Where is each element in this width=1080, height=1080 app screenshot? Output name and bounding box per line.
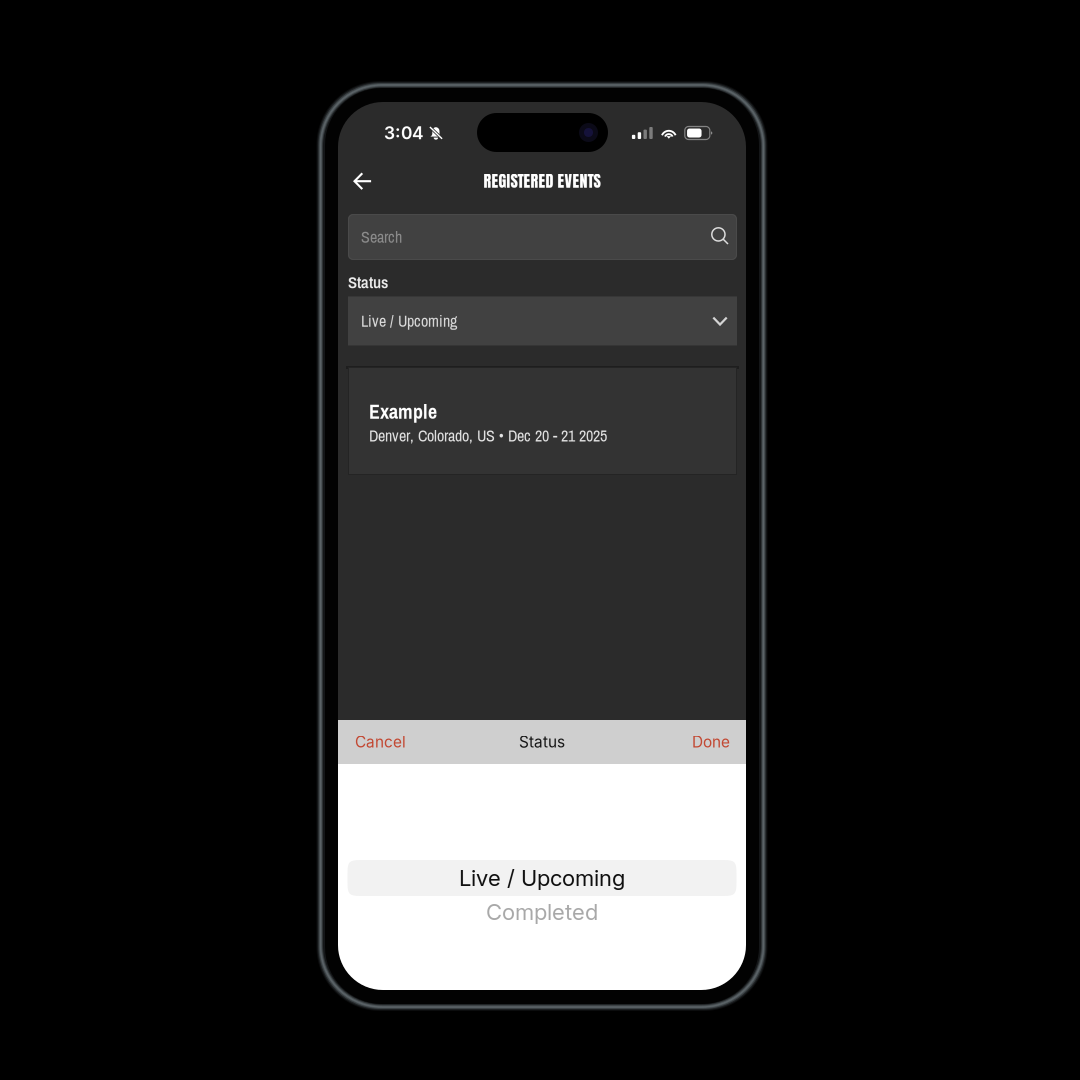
staticText: Status (348, 271, 388, 293)
button[interactable]: Back (338, 160, 387, 202)
button[interactable]: Search (348, 214, 737, 260)
button[interactable]: Done (675, 720, 746, 764)
staticText: Cancel (355, 733, 406, 751)
staticText: Live / Upcoming (361, 310, 457, 332)
staticText: Completed (486, 899, 598, 925)
staticText: Search (361, 226, 402, 248)
staticText: Denver, Colorado, US • Dec 20 - 21 2025 (369, 425, 607, 446)
staticText: 3:04 (384, 122, 424, 143)
staticText: Example (369, 398, 437, 425)
staticText: REGISTERED EVENTS (483, 169, 600, 193)
staticText: Live / Upcoming (459, 865, 625, 891)
button[interactable]: Live / Upcoming (347, 860, 736, 896)
staticText: Done (692, 733, 730, 751)
staticText: Status (519, 733, 565, 751)
button[interactable]: Completed (347, 896, 736, 928)
button[interactable]: Live / Upcoming (348, 296, 737, 345)
button[interactable]: Example (348, 367, 737, 475)
button[interactable]: Cancel (338, 720, 423, 764)
